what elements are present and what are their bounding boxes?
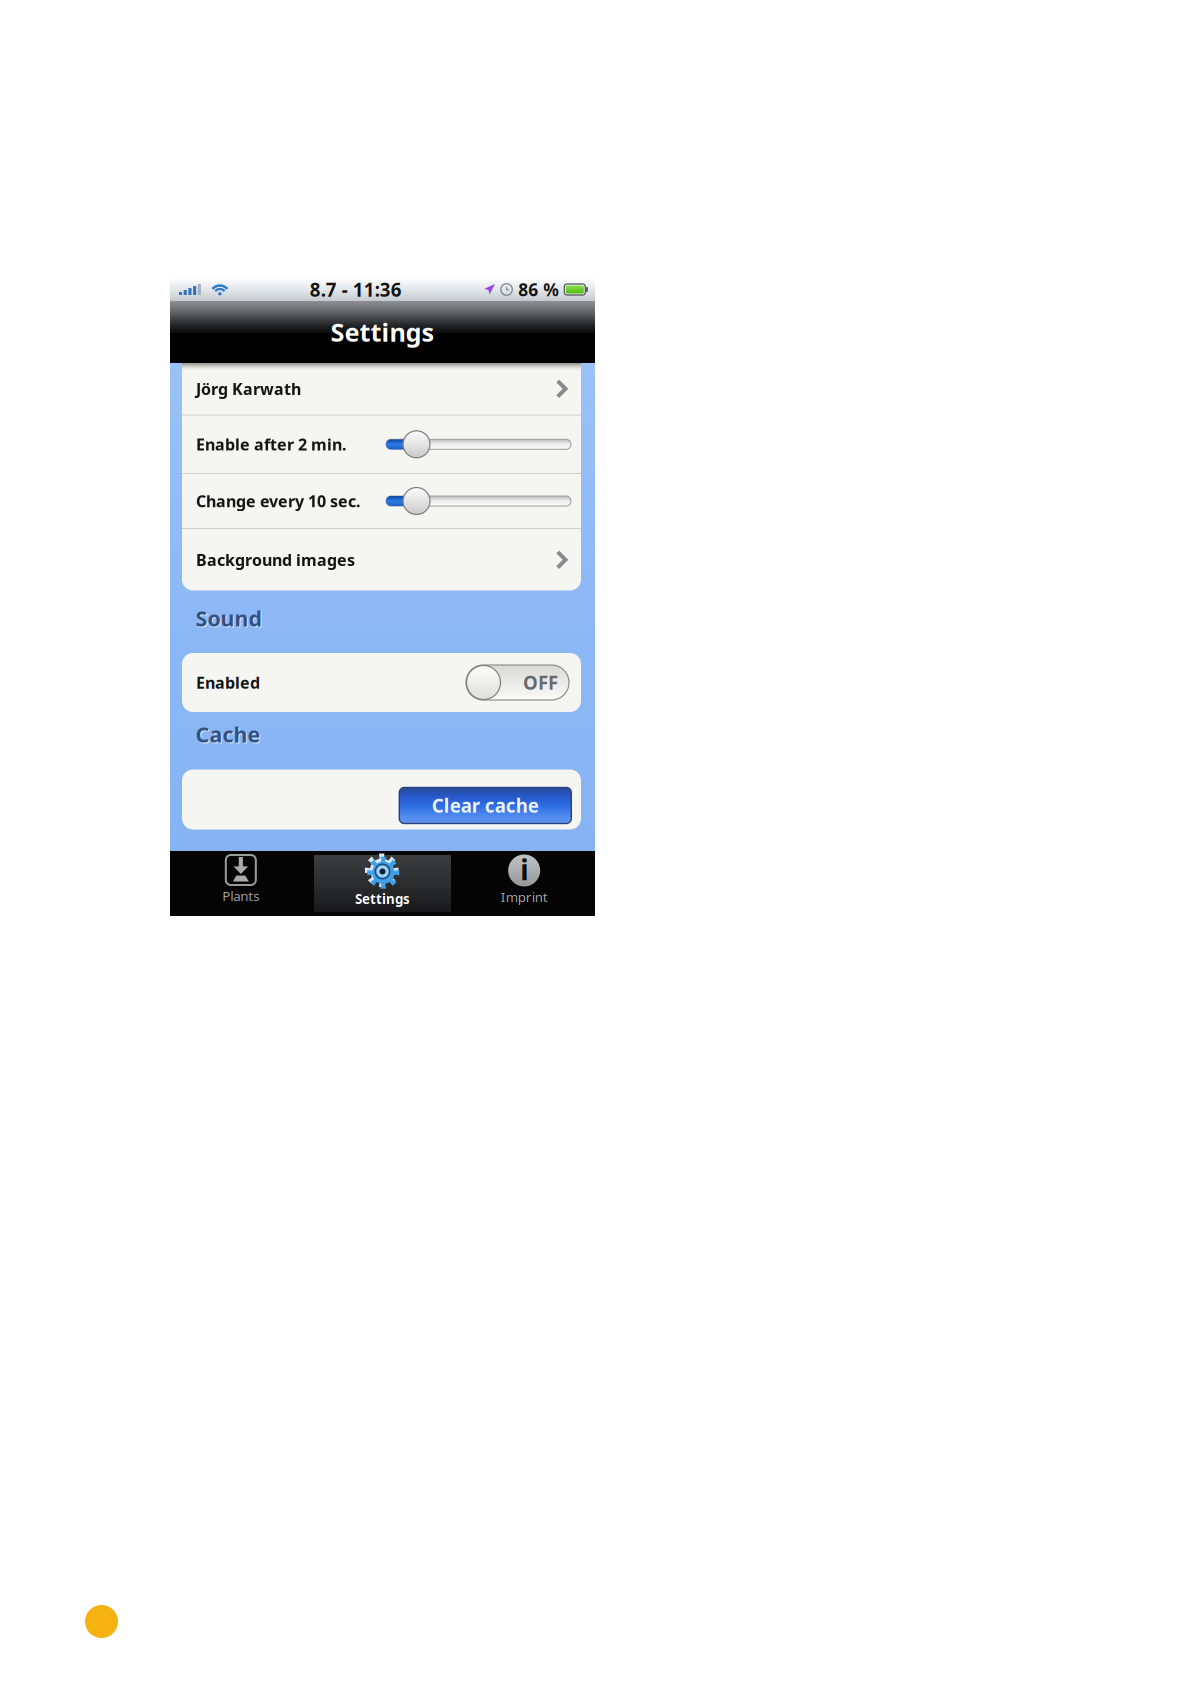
staticText: Clear cache [432, 793, 539, 818]
staticText: Cache [195, 720, 260, 748]
staticText: Background images [196, 549, 355, 570]
staticText: i [520, 851, 528, 888]
staticText: Settings [355, 890, 410, 908]
staticText: Plants [222, 887, 259, 905]
staticText: Jörg Karwath [196, 378, 301, 399]
staticText: Imprint [501, 888, 548, 906]
staticText: Enable after 2 min. [196, 434, 346, 455]
staticText: OFF [523, 670, 558, 695]
staticText: 8.7 - 11:36 [310, 277, 402, 302]
button[interactable]: OFF [466, 665, 569, 700]
staticText: Enabled [196, 672, 260, 693]
staticText: 86 % [518, 278, 559, 301]
staticText: Sound [196, 605, 262, 633]
staticText: Cache [196, 721, 261, 749]
button[interactable]: Plants [170, 851, 312, 916]
staticText: Settings [330, 315, 434, 349]
button[interactable]: Settings [312, 851, 453, 916]
button[interactable]: Jörg Karwath [182, 363, 581, 415]
staticText: Change every 10 sec. [196, 490, 360, 512]
button[interactable]: i [453, 851, 595, 916]
staticText: Sound [195, 604, 261, 632]
button[interactable]: Background images [182, 529, 581, 590]
button[interactable]: Clear cache [399, 781, 571, 817]
